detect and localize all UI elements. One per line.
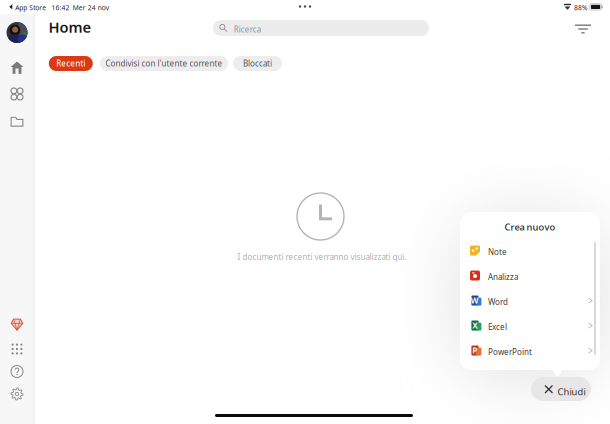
staticText: I documenti recenti verranno visualizzat… (237, 252, 406, 262)
staticText: Chiudi (557, 385, 585, 398)
staticText: P (472, 345, 477, 356)
staticText: Recenti (56, 58, 85, 69)
button[interactable]: Recenti (49, 56, 93, 71)
staticText: PowerPoint (488, 346, 532, 357)
button[interactable]: Copilot (6, 313, 28, 335)
button[interactable]: Bloccati (233, 56, 282, 71)
staticText: 16:42 (51, 3, 69, 12)
staticText: 88% (574, 3, 588, 12)
button[interactable]: Analizza (460, 263, 600, 288)
staticText: Bloccati (243, 58, 272, 69)
button[interactable]: Note (460, 238, 600, 263)
button[interactable]: Account (6, 22, 27, 43)
staticText: Note (488, 246, 507, 257)
staticText: W (471, 295, 479, 306)
button[interactable]: W (460, 288, 600, 313)
staticText: Excel (488, 321, 507, 332)
button[interactable]: App (6, 83, 28, 105)
staticText: Analizza (488, 271, 518, 282)
button[interactable]: Home (48, 19, 108, 35)
button[interactable]: Altre app (6, 338, 28, 360)
button[interactable]: Condivisi con l'utente corrente (100, 56, 228, 71)
staticText: Condivisi con l'utente corrente (105, 58, 222, 69)
staticText: Ricerca (234, 24, 261, 35)
button[interactable]: Ricerca (213, 20, 429, 36)
button[interactable]: Filtro (573, 19, 593, 39)
button[interactable]: File (6, 110, 28, 132)
button[interactable]: X (460, 313, 600, 338)
button[interactable]: Home (6, 56, 28, 78)
button[interactable]: Impostazioni (6, 383, 28, 405)
staticText: App Store (15, 3, 46, 12)
button[interactable]: Chiudi (531, 377, 591, 401)
staticText: Mer 24 nov (73, 3, 109, 12)
button[interactable]: P (460, 338, 600, 363)
staticText: Home (48, 17, 91, 37)
button[interactable]: Guida (6, 360, 28, 382)
staticText: Word (488, 296, 508, 307)
staticText: Crea nuovo (504, 221, 555, 233)
staticText: X (472, 320, 477, 331)
